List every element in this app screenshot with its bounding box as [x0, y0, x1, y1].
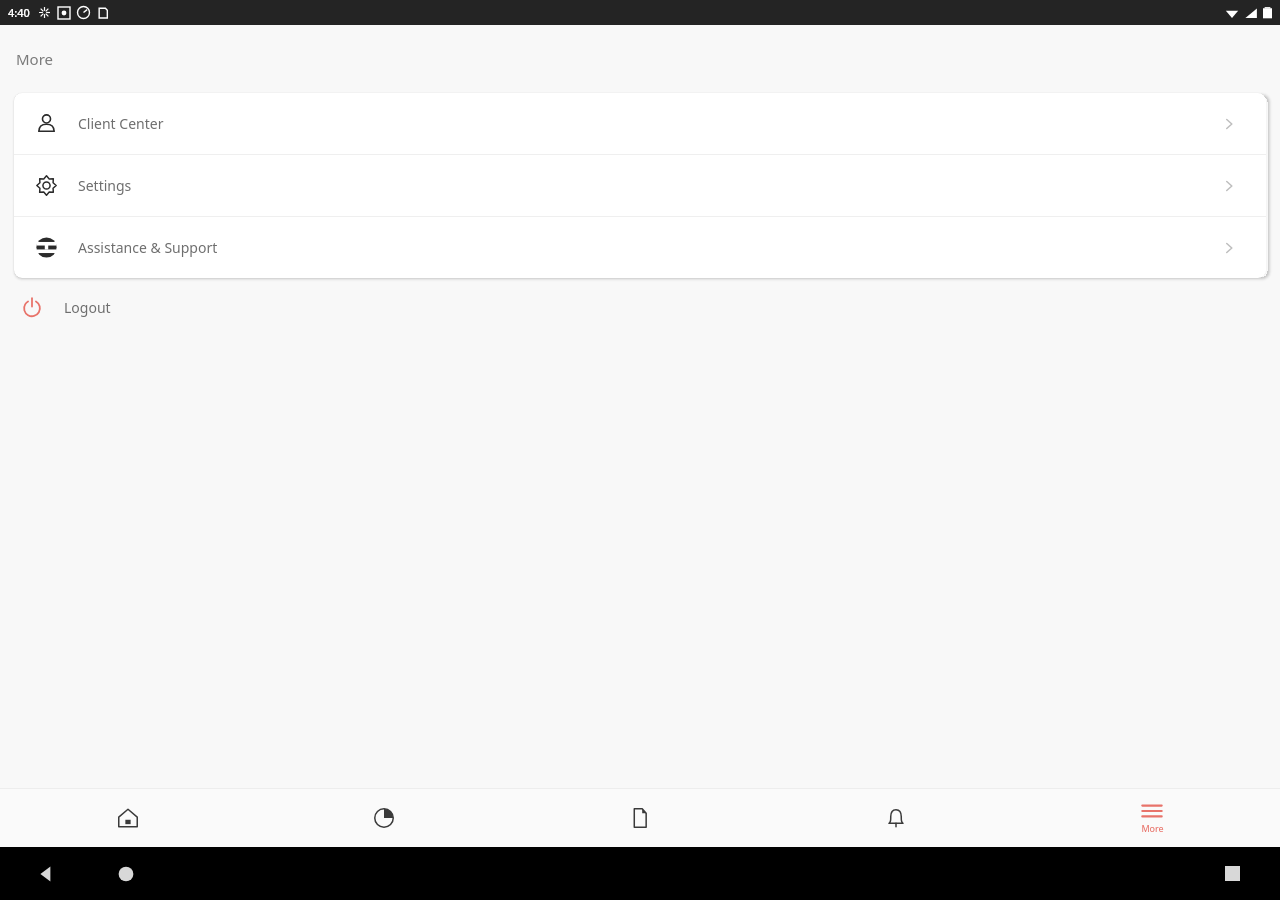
staticText: Assistance & Support	[78, 238, 218, 257]
staticText: Logout	[64, 298, 111, 317]
staticText: Client Center	[78, 114, 164, 133]
button[interactable]: Settings	[14, 155, 1266, 216]
button[interactable]: More	[1024, 789, 1280, 847]
button[interactable]: Portfolio	[256, 789, 512, 847]
staticText: More	[1141, 822, 1164, 834]
button[interactable]: Notifications	[768, 789, 1024, 847]
button[interactable]: Home	[0, 789, 256, 847]
button[interactable]: Client Center	[14, 93, 1266, 154]
staticText: Settings	[78, 176, 132, 195]
button[interactable]: Logout	[0, 278, 1280, 336]
button[interactable]: Assistance & Support	[14, 217, 1266, 278]
staticText: 4:40	[8, 5, 30, 20]
button[interactable]: Documents	[512, 789, 768, 847]
staticText: More	[16, 49, 54, 69]
